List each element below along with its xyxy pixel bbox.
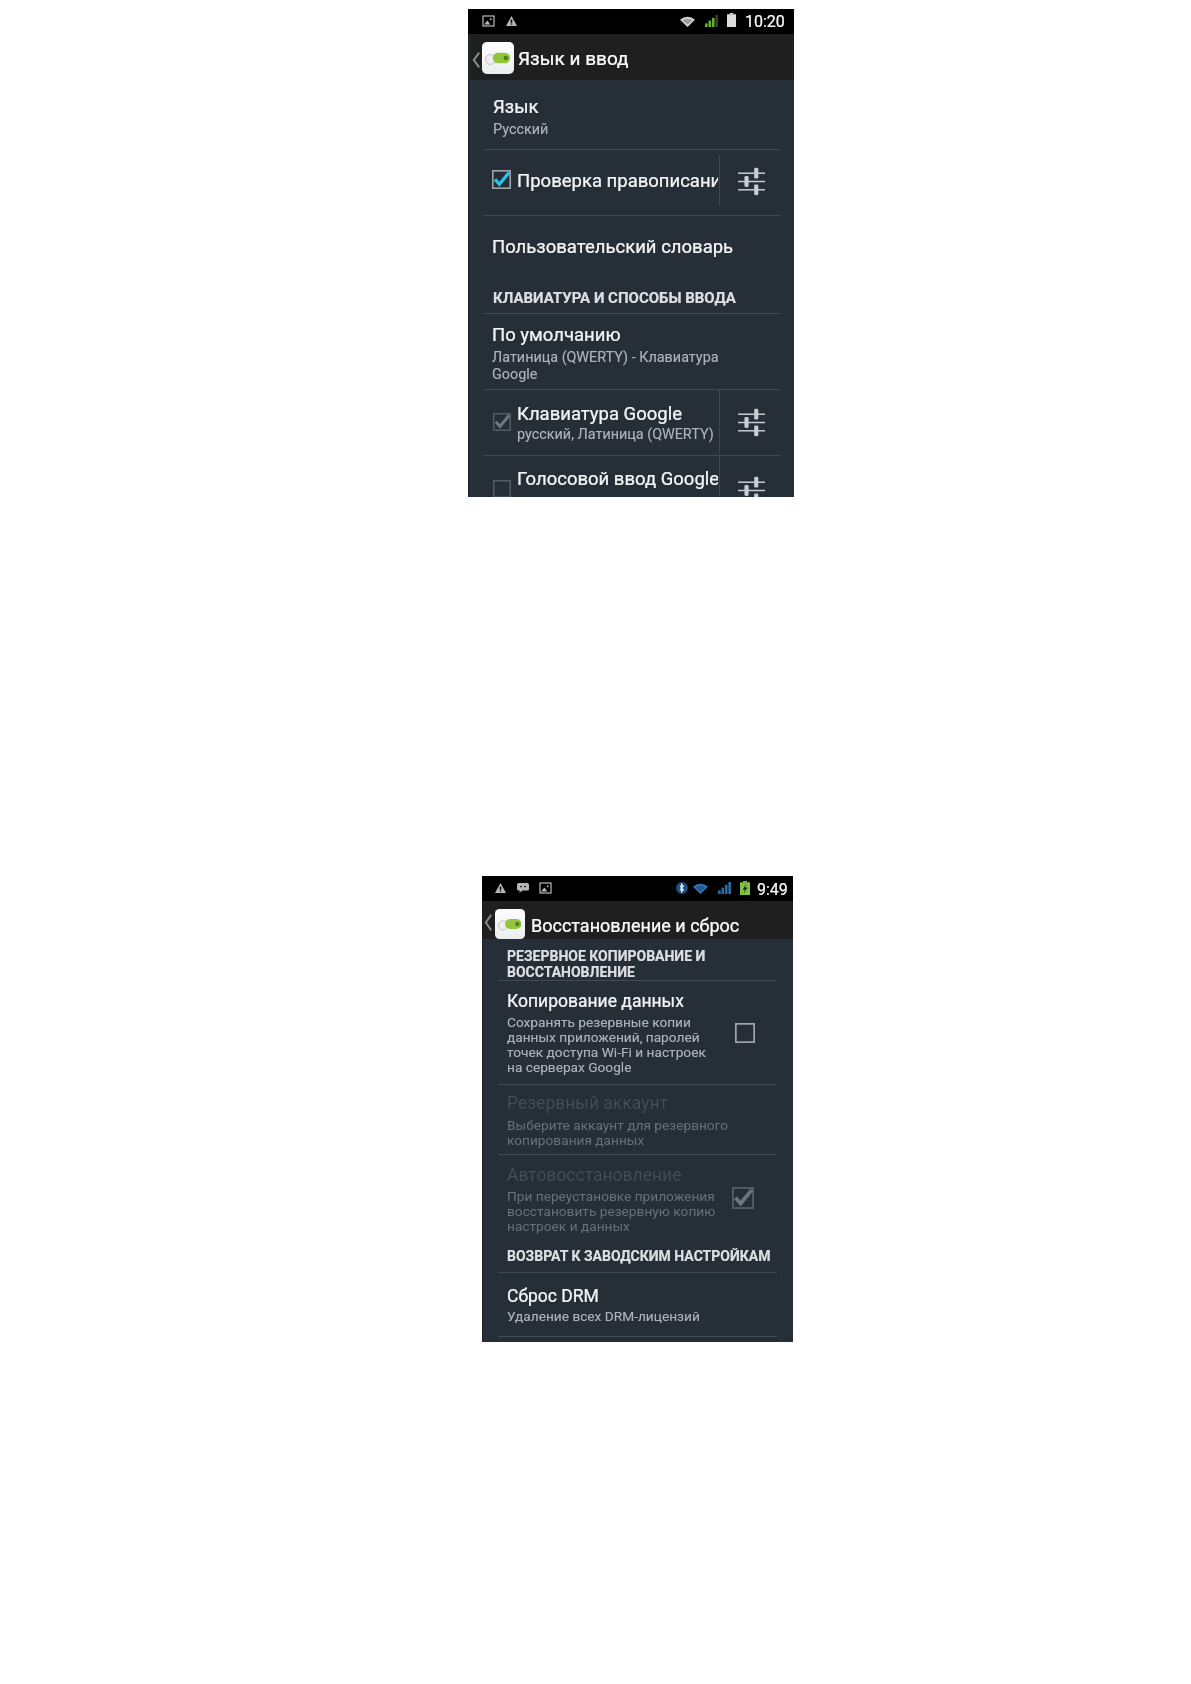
staticText: Восстановление и сброс <box>531 915 740 936</box>
button[interactable]: Резервный аккаунт <box>482 1085 793 1154</box>
staticText: Удаление всех DRM-лицензий <box>507 1308 700 1324</box>
button[interactable]: Voice input settings <box>720 456 794 498</box>
staticText: Язык и ввод <box>518 47 629 69</box>
button[interactable]: По умолчанию <box>470 314 794 388</box>
button[interactable]: Google keyboard settings <box>720 390 794 455</box>
button[interactable]: Копирование данных <box>482 981 793 1084</box>
staticText: Язык <box>493 96 539 118</box>
button[interactable]: Проверка правописания <box>470 150 718 215</box>
button[interactable]: Spell checker settings <box>720 150 794 215</box>
staticText: При переустановке приложения восстановит… <box>507 1188 747 1234</box>
staticText: КЛАВИАТУРА И СПОСОБЫ ВВОДА <box>493 289 736 307</box>
staticText: Резервный аккаунт <box>507 1093 668 1114</box>
staticText: Клавиатура Google <box>517 403 683 425</box>
staticText: русский, Латиница (QWERTY) <box>517 426 714 443</box>
staticText: 10:20 <box>745 12 785 31</box>
button[interactable]: Navigate up: Восстановление и сброс <box>482 901 742 939</box>
staticText: РЕЗЕРВНОЕ КОПИРОВАНИЕ И ВОССТАНОВЛЕНИЕ <box>507 948 757 980</box>
staticText: Проверка правописания <box>517 170 718 192</box>
staticText: Выберите аккаунт для резервного копирова… <box>507 1117 767 1148</box>
staticText: По умолчанию <box>492 324 621 346</box>
button[interactable]: Пользовательский словарь <box>470 216 794 282</box>
button[interactable]: Navigate up: Язык и ввод <box>470 34 645 80</box>
staticText: Латиница (QWERTY) - Клавиатура Google <box>492 349 742 383</box>
button[interactable]: Автовосстановление <box>482 1155 793 1272</box>
button[interactable]: Клавиатура Google <box>470 390 718 455</box>
staticText: Русский <box>493 121 549 138</box>
button[interactable]: Сброс DRM <box>482 1273 793 1336</box>
staticText: Пользовательский словарь <box>492 236 734 258</box>
staticText: ВОЗВРАТ К ЗАВОДСКИМ НАСТРОЙКАМ <box>507 1248 771 1264</box>
staticText: Голосовой ввод Google <box>517 468 718 490</box>
button[interactable]: Голосовой ввод Google <box>470 456 718 498</box>
staticText: Копирование данных <box>507 991 684 1012</box>
staticText: Сохранять резервные копии данных приложе… <box>507 1014 732 1076</box>
button[interactable]: Язык <box>470 79 794 148</box>
staticText: Сброс DRM <box>507 1286 599 1307</box>
staticText: 9:49 <box>757 880 788 899</box>
staticText: Автовосстановление <box>507 1165 682 1186</box>
